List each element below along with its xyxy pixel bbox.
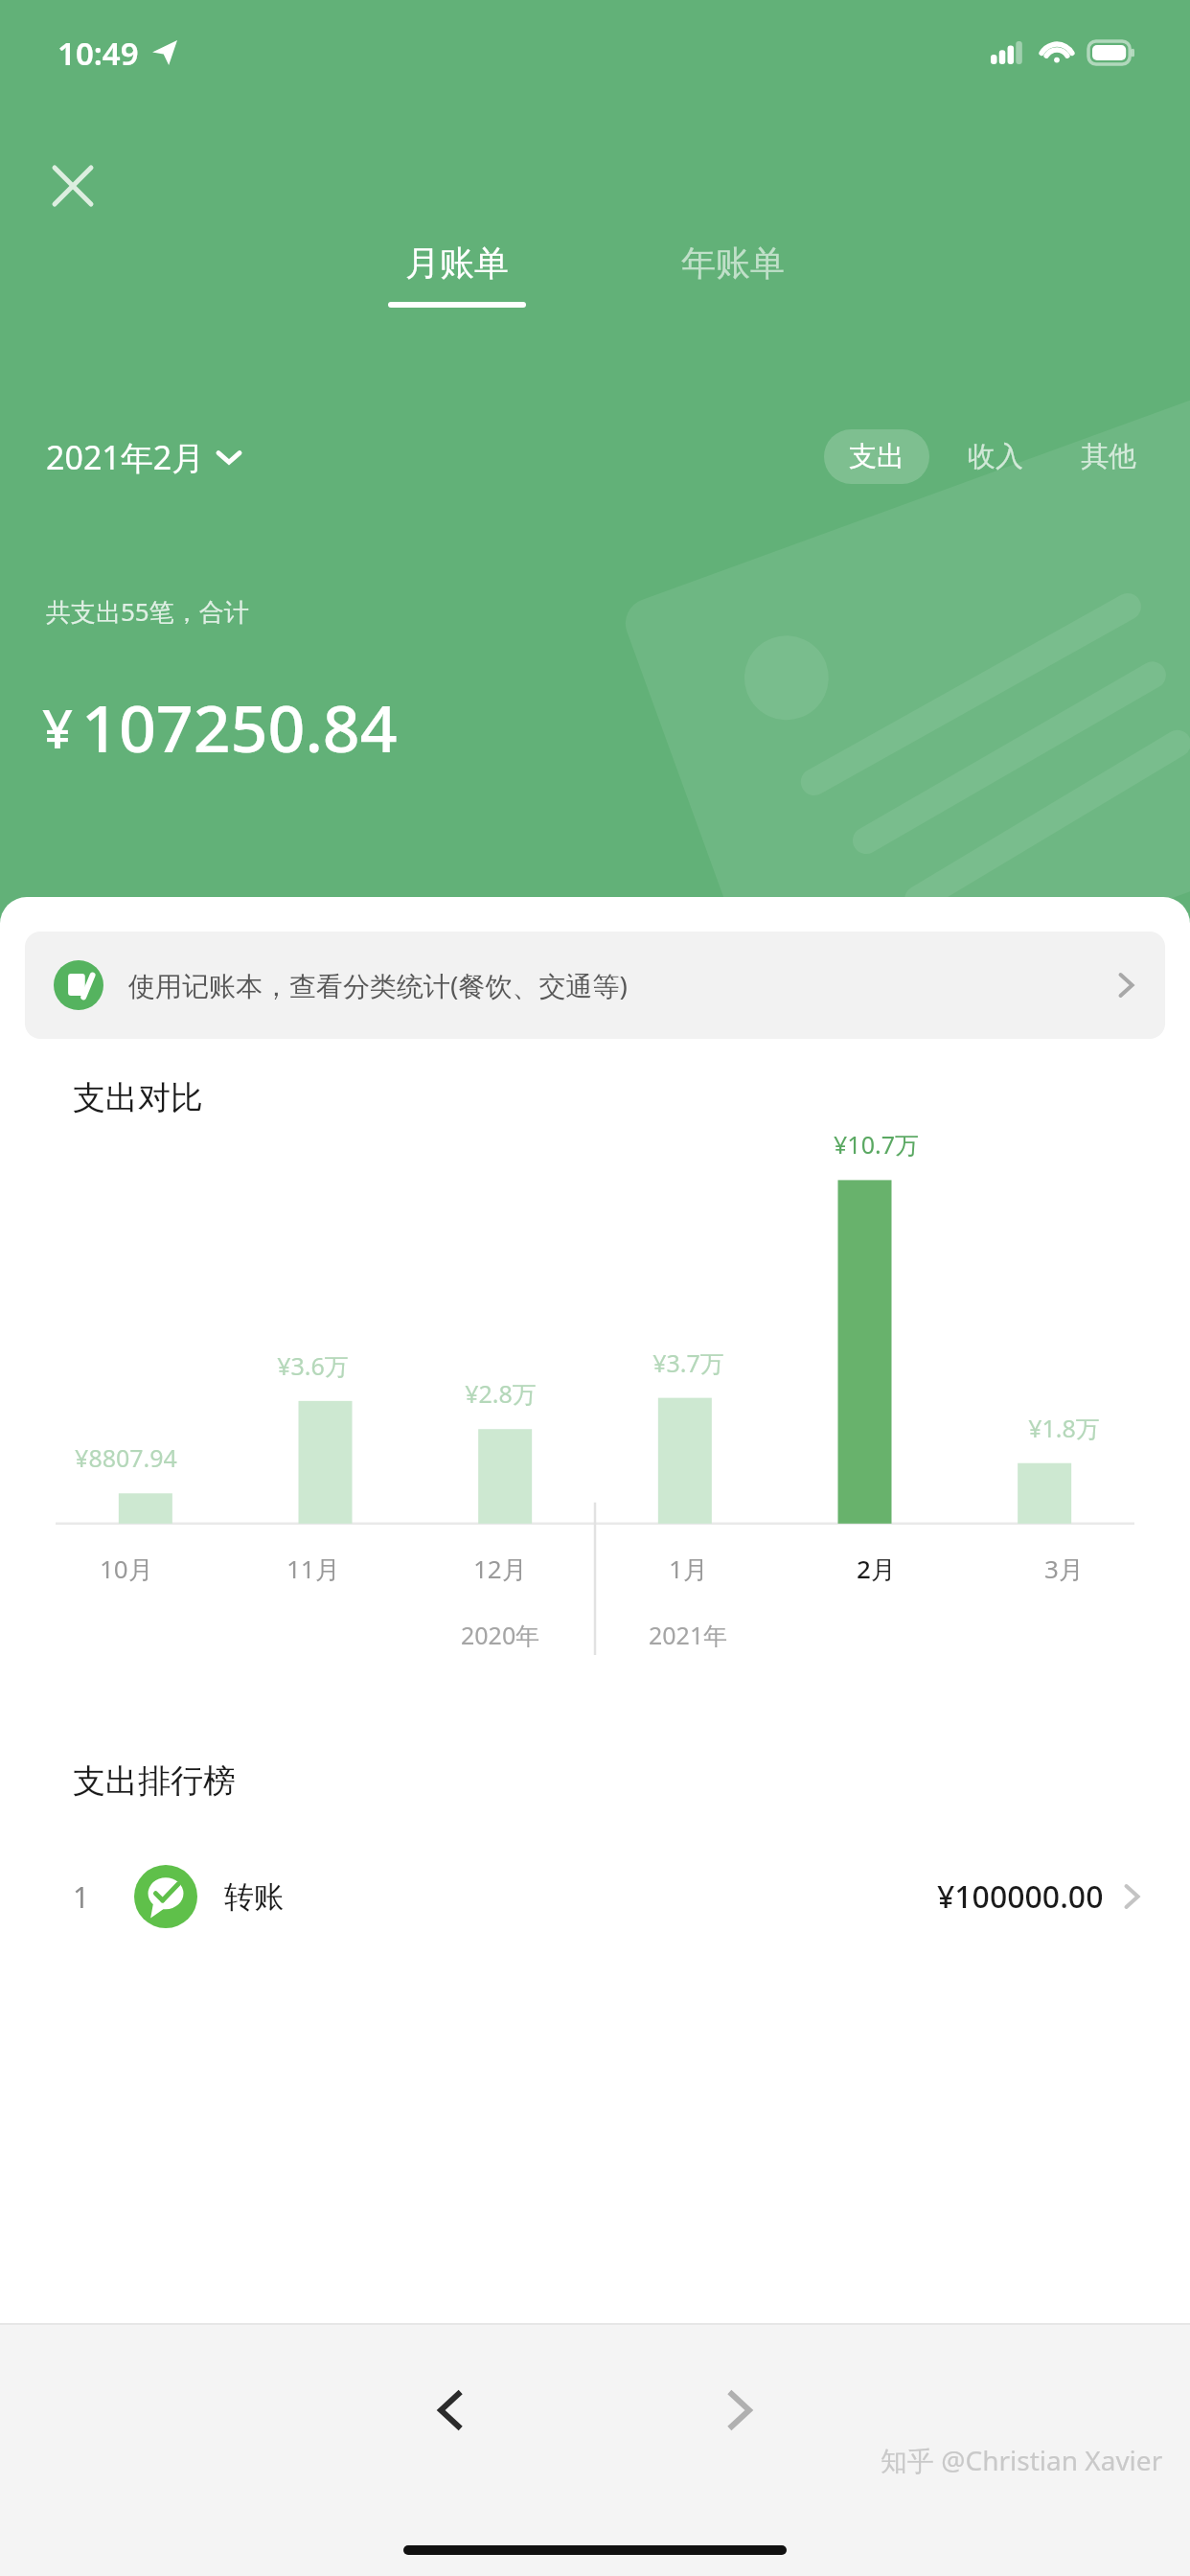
button[interactable]: 支出: [824, 429, 929, 484]
staticText: 2020年: [461, 1619, 540, 1651]
staticText: 共支出55笔，合计: [46, 594, 249, 629]
button[interactable]: 其他: [1071, 429, 1146, 484]
button[interactable]: 1: [0, 1846, 1190, 1947]
staticText: 支出排行榜: [73, 1760, 236, 1802]
staticText: ¥: [42, 691, 74, 764]
staticText: 支出: [849, 439, 904, 474]
staticText: 11月: [286, 1552, 340, 1586]
button[interactable]: Previous: [399, 2357, 504, 2463]
staticText: 2021年: [649, 1619, 728, 1651]
staticText: 收入: [968, 439, 1023, 474]
button[interactable]: Close: [38, 151, 107, 220]
staticText: 年账单: [681, 241, 785, 285]
staticText: 使用记账本，查看分类统计(餐饮、交通等): [128, 967, 628, 1003]
staticText: 其他: [1081, 439, 1136, 474]
staticText: 转账: [224, 1878, 284, 1916]
staticText: ¥8807.94: [75, 1441, 177, 1474]
staticText: 支出对比: [73, 1077, 203, 1118]
staticText: 1月: [669, 1552, 708, 1586]
staticText: ¥2.8万: [465, 1377, 537, 1410]
staticText: 月账单: [405, 241, 509, 285]
staticText: ¥3.6万: [277, 1349, 349, 1382]
staticText: 10月: [100, 1552, 153, 1586]
staticText: 107250.84: [81, 682, 398, 771]
staticText: 2月: [857, 1552, 896, 1586]
staticText: 2021年2月: [46, 435, 205, 479]
button[interactable]: 年账单: [651, 241, 815, 308]
button[interactable]: 使用记账本，查看分类统计(餐饮、交通等): [25, 931, 1165, 1039]
staticText: ¥100000.00: [937, 1875, 1104, 1918]
staticText: 1: [73, 1877, 90, 1917]
staticText: ¥1.8万: [1028, 1412, 1100, 1444]
staticText: 12月: [473, 1552, 527, 1586]
staticText: ¥3.7万: [652, 1346, 724, 1379]
staticText: 10:49: [57, 32, 139, 75]
button[interactable]: Next: [686, 2357, 791, 2463]
staticText: 3月: [1044, 1552, 1084, 1586]
button[interactable]: 2021年2月: [46, 435, 240, 479]
button[interactable]: 收入: [958, 429, 1033, 484]
staticText: 知乎 @Christian Xavier: [881, 2442, 1163, 2478]
staticText: ¥10.7万: [834, 1128, 919, 1161]
button[interactable]: 月账单: [375, 241, 539, 308]
